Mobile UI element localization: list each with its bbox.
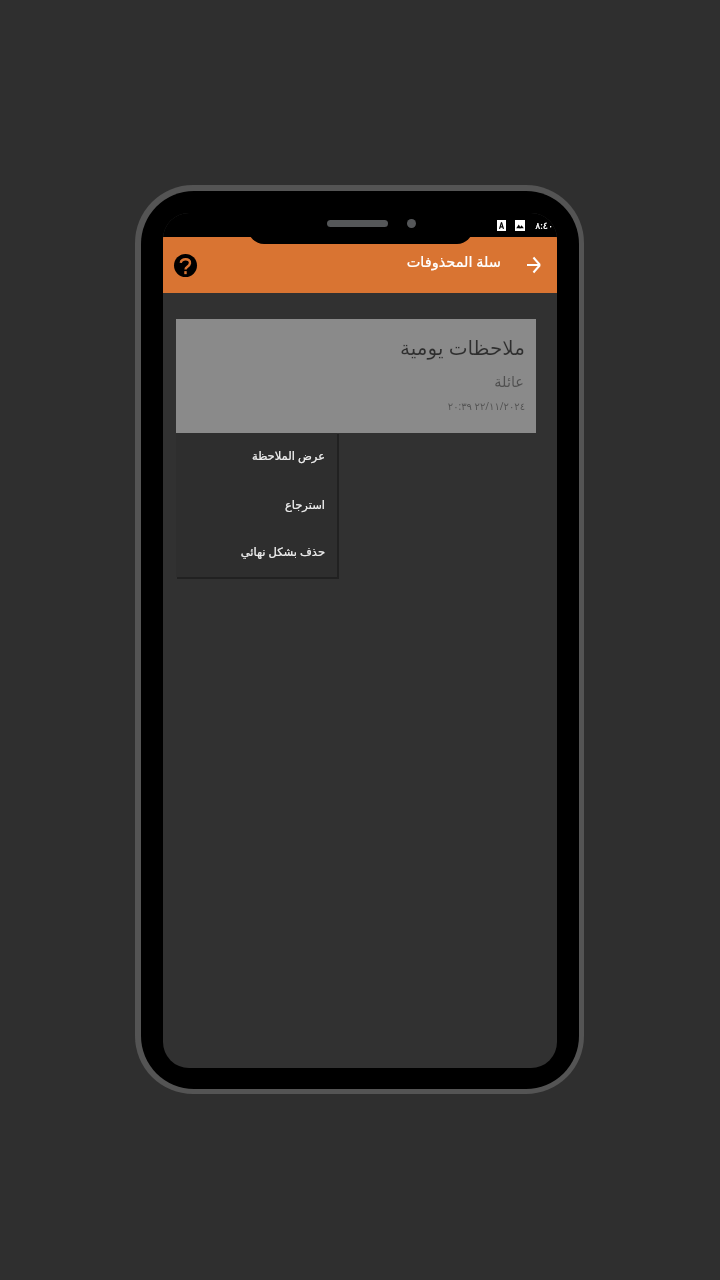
button[interactable]: Back bbox=[515, 246, 553, 284]
staticText: سلة المحذوفات bbox=[406, 251, 501, 271]
button[interactable]: حذف بشكل نهائي bbox=[176, 529, 337, 577]
staticText: ٢٢/١١/٢٠٢٤ ٢٠:٣٩ bbox=[447, 399, 525, 413]
staticText: ملاحظات يومية bbox=[400, 334, 525, 361]
button[interactable]: عرض الملاحظة bbox=[176, 433, 337, 481]
button[interactable]: Help bbox=[167, 247, 203, 283]
staticText: عائلة bbox=[494, 374, 524, 391]
staticText: عرض الملاحظة bbox=[251, 448, 325, 464]
button[interactable]: ملاحظات يومية bbox=[176, 319, 536, 433]
staticText: ٨:٤٠ bbox=[535, 219, 553, 232]
button[interactable]: استرجاع bbox=[176, 481, 337, 529]
staticText: استرجاع bbox=[284, 498, 325, 511]
staticText: حذف بشكل نهائي bbox=[240, 544, 325, 560]
